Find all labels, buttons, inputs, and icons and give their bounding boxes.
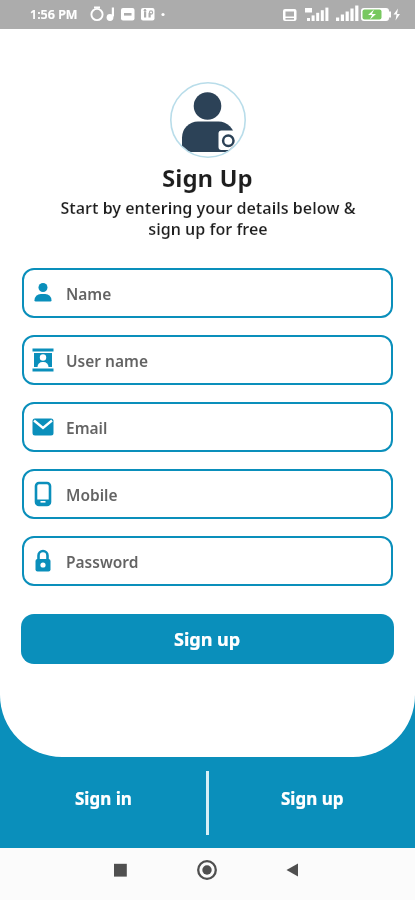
staticText: Sign Up	[162, 161, 253, 194]
button[interactable]	[139, 848, 277, 900]
staticText: Name	[66, 283, 112, 304]
button[interactable]: Mobile	[22, 469, 393, 519]
staticText: Sign in	[75, 787, 132, 810]
staticText: Sign up	[174, 627, 241, 652]
staticText: Password	[66, 551, 139, 572]
staticText: Start by entering your details below & s…	[60, 197, 356, 240]
button[interactable]: Sign in	[0, 757, 206, 848]
button[interactable]: Name	[22, 268, 393, 318]
button[interactable]: User name	[22, 335, 393, 385]
staticText: Email	[66, 417, 108, 438]
button[interactable]	[277, 848, 415, 900]
button[interactable]: Password	[22, 536, 393, 586]
button[interactable]	[0, 848, 139, 900]
button[interactable]: Sign up	[209, 757, 415, 848]
button[interactable]: Email	[22, 402, 393, 452]
staticText: Sign up	[281, 787, 344, 810]
staticText: User name	[66, 350, 148, 371]
staticText: 1:56 PM	[30, 6, 78, 23]
staticText: Mobile	[66, 484, 118, 505]
button[interactable]: Sign up	[21, 614, 394, 664]
